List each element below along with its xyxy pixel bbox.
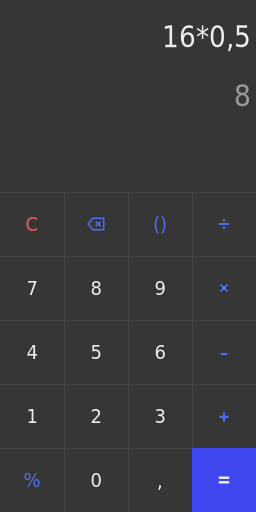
- staticText: 16*0,5: [162, 20, 251, 54]
- staticText: 6: [154, 340, 165, 364]
- staticText: 2: [90, 404, 101, 428]
- button[interactable]: 2: [64, 384, 128, 448]
- staticText: 1: [26, 404, 37, 428]
- button[interactable]: 8: [64, 256, 128, 320]
- button[interactable]: 1: [0, 384, 64, 448]
- staticText: (): [153, 212, 167, 236]
- button[interactable]: Plus: [192, 384, 256, 448]
- button[interactable]: Divide: [192, 192, 256, 256]
- staticText: C: [25, 212, 38, 236]
- staticText: 9: [154, 276, 165, 300]
- staticText: ,: [157, 469, 163, 493]
- staticText: 8: [90, 276, 101, 300]
- button[interactable]: %: [0, 448, 64, 512]
- staticText: 0: [90, 468, 101, 492]
- button[interactable]: Equals: [192, 448, 256, 512]
- button[interactable]: 9: [128, 256, 192, 320]
- button[interactable]: Minus: [192, 320, 256, 384]
- staticText: 3: [154, 404, 165, 428]
- staticText: 4: [26, 340, 37, 364]
- button[interactable]: Delete: [64, 192, 128, 256]
- button[interactable]: 5: [64, 320, 128, 384]
- staticText: 7: [26, 276, 37, 300]
- button[interactable]: 7: [0, 256, 64, 320]
- button[interactable]: C: [0, 192, 64, 256]
- button[interactable]: 3: [128, 384, 192, 448]
- staticText: 5: [90, 340, 101, 364]
- button[interactable]: Multiply: [192, 256, 256, 320]
- button[interactable]: (): [128, 192, 192, 256]
- button[interactable]: ,: [128, 448, 192, 512]
- button[interactable]: 4: [0, 320, 64, 384]
- button[interactable]: 0: [64, 448, 128, 512]
- staticText: %: [23, 468, 40, 492]
- staticText: 8: [234, 79, 251, 113]
- button[interactable]: 6: [128, 320, 192, 384]
